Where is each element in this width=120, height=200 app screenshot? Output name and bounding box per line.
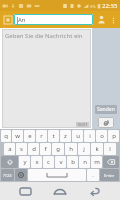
button[interactable]: Menü bbox=[2, 14, 13, 25]
button[interactable]: n bbox=[79, 156, 90, 168]
staticText: r bbox=[40, 132, 43, 140]
button[interactable]: a bbox=[4, 143, 15, 155]
button[interactable]: i bbox=[84, 130, 95, 142]
button[interactable]: Zurück bbox=[85, 182, 105, 200]
staticText: b bbox=[71, 158, 75, 166]
button[interactable]: Kontakte bbox=[95, 13, 108, 26]
button[interactable]: d bbox=[28, 143, 39, 155]
staticText: Enter bbox=[104, 173, 115, 178]
button[interactable]: t bbox=[48, 130, 59, 142]
button[interactable]: u bbox=[72, 130, 83, 142]
button[interactable]: b bbox=[67, 156, 78, 168]
staticText: z bbox=[64, 132, 67, 140]
staticText: e bbox=[28, 132, 32, 140]
button[interactable]: Einstellungen bbox=[15, 169, 27, 181]
button[interactable]: l bbox=[104, 143, 116, 155]
staticText: n bbox=[83, 158, 87, 166]
staticText: i bbox=[89, 132, 91, 140]
staticText: Senden bbox=[97, 106, 115, 113]
button[interactable]: Weitere Optionen bbox=[108, 15, 118, 25]
button[interactable]: Löschen bbox=[103, 156, 119, 168]
button[interactable]: z bbox=[60, 130, 71, 142]
button[interactable]: q bbox=[1, 130, 11, 142]
button[interactable]: p bbox=[108, 130, 119, 142]
staticText: a bbox=[8, 145, 12, 153]
staticText: 3% bbox=[90, 4, 96, 9]
button[interactable]: An bbox=[14, 14, 93, 25]
button[interactable]: h bbox=[65, 143, 77, 155]
button[interactable]: r bbox=[36, 130, 47, 142]
button[interactable]: Startbildschirm bbox=[50, 182, 70, 200]
staticText: m bbox=[94, 158, 100, 166]
button[interactable]: s bbox=[16, 143, 27, 155]
button[interactable]: Umschalt bbox=[1, 156, 18, 168]
button[interactable]: Letzte Apps bbox=[15, 182, 35, 200]
staticText: g bbox=[56, 145, 60, 153]
button[interactable]: Senden bbox=[95, 105, 117, 114]
button[interactable]: Enter bbox=[100, 169, 119, 181]
button[interactable]: k bbox=[91, 143, 103, 155]
button[interactable]: x bbox=[31, 156, 42, 168]
button[interactable]: Anhang hinzufügen bbox=[98, 117, 114, 128]
button[interactable]: v bbox=[55, 156, 66, 168]
staticText: Geben Sie die Nachricht ein bbox=[5, 32, 83, 40]
button[interactable]: j bbox=[78, 143, 90, 155]
button[interactable]: o bbox=[96, 130, 107, 142]
staticText: 22:55 bbox=[102, 2, 118, 10]
staticText: y bbox=[23, 158, 27, 166]
button[interactable]: m bbox=[91, 156, 102, 168]
staticText: k bbox=[95, 145, 99, 153]
staticText: d bbox=[32, 145, 36, 153]
staticText: c bbox=[47, 158, 50, 166]
staticText: An bbox=[18, 16, 26, 24]
button[interactable]: f bbox=[40, 143, 51, 155]
button[interactable]: g bbox=[52, 143, 64, 155]
staticText: s bbox=[20, 145, 23, 153]
staticText: x bbox=[35, 158, 39, 166]
button[interactable]: e bbox=[24, 130, 35, 142]
staticText: u bbox=[76, 132, 80, 140]
staticText: l bbox=[109, 145, 111, 153]
button[interactable]: ?123 bbox=[1, 169, 14, 181]
staticText: 160/1 bbox=[77, 122, 88, 127]
button[interactable]: . bbox=[87, 169, 99, 181]
staticText: o bbox=[100, 132, 104, 140]
staticText: ?123 bbox=[3, 173, 12, 178]
staticText: h bbox=[69, 145, 73, 153]
staticText: . bbox=[92, 171, 94, 179]
staticText: t bbox=[52, 132, 55, 140]
staticText: w bbox=[15, 132, 20, 140]
button[interactable]: Geben Sie die Nachricht ein bbox=[2, 29, 91, 128]
staticText: j bbox=[83, 145, 85, 153]
button[interactable]: w bbox=[12, 130, 23, 142]
staticText: p bbox=[112, 132, 116, 140]
button[interactable]: c bbox=[43, 156, 54, 168]
staticText: v bbox=[59, 158, 63, 166]
button[interactable]: y bbox=[19, 156, 30, 168]
staticText: f bbox=[44, 145, 47, 153]
button[interactable]: Leertaste bbox=[28, 169, 86, 181]
staticText: q bbox=[4, 132, 8, 140]
